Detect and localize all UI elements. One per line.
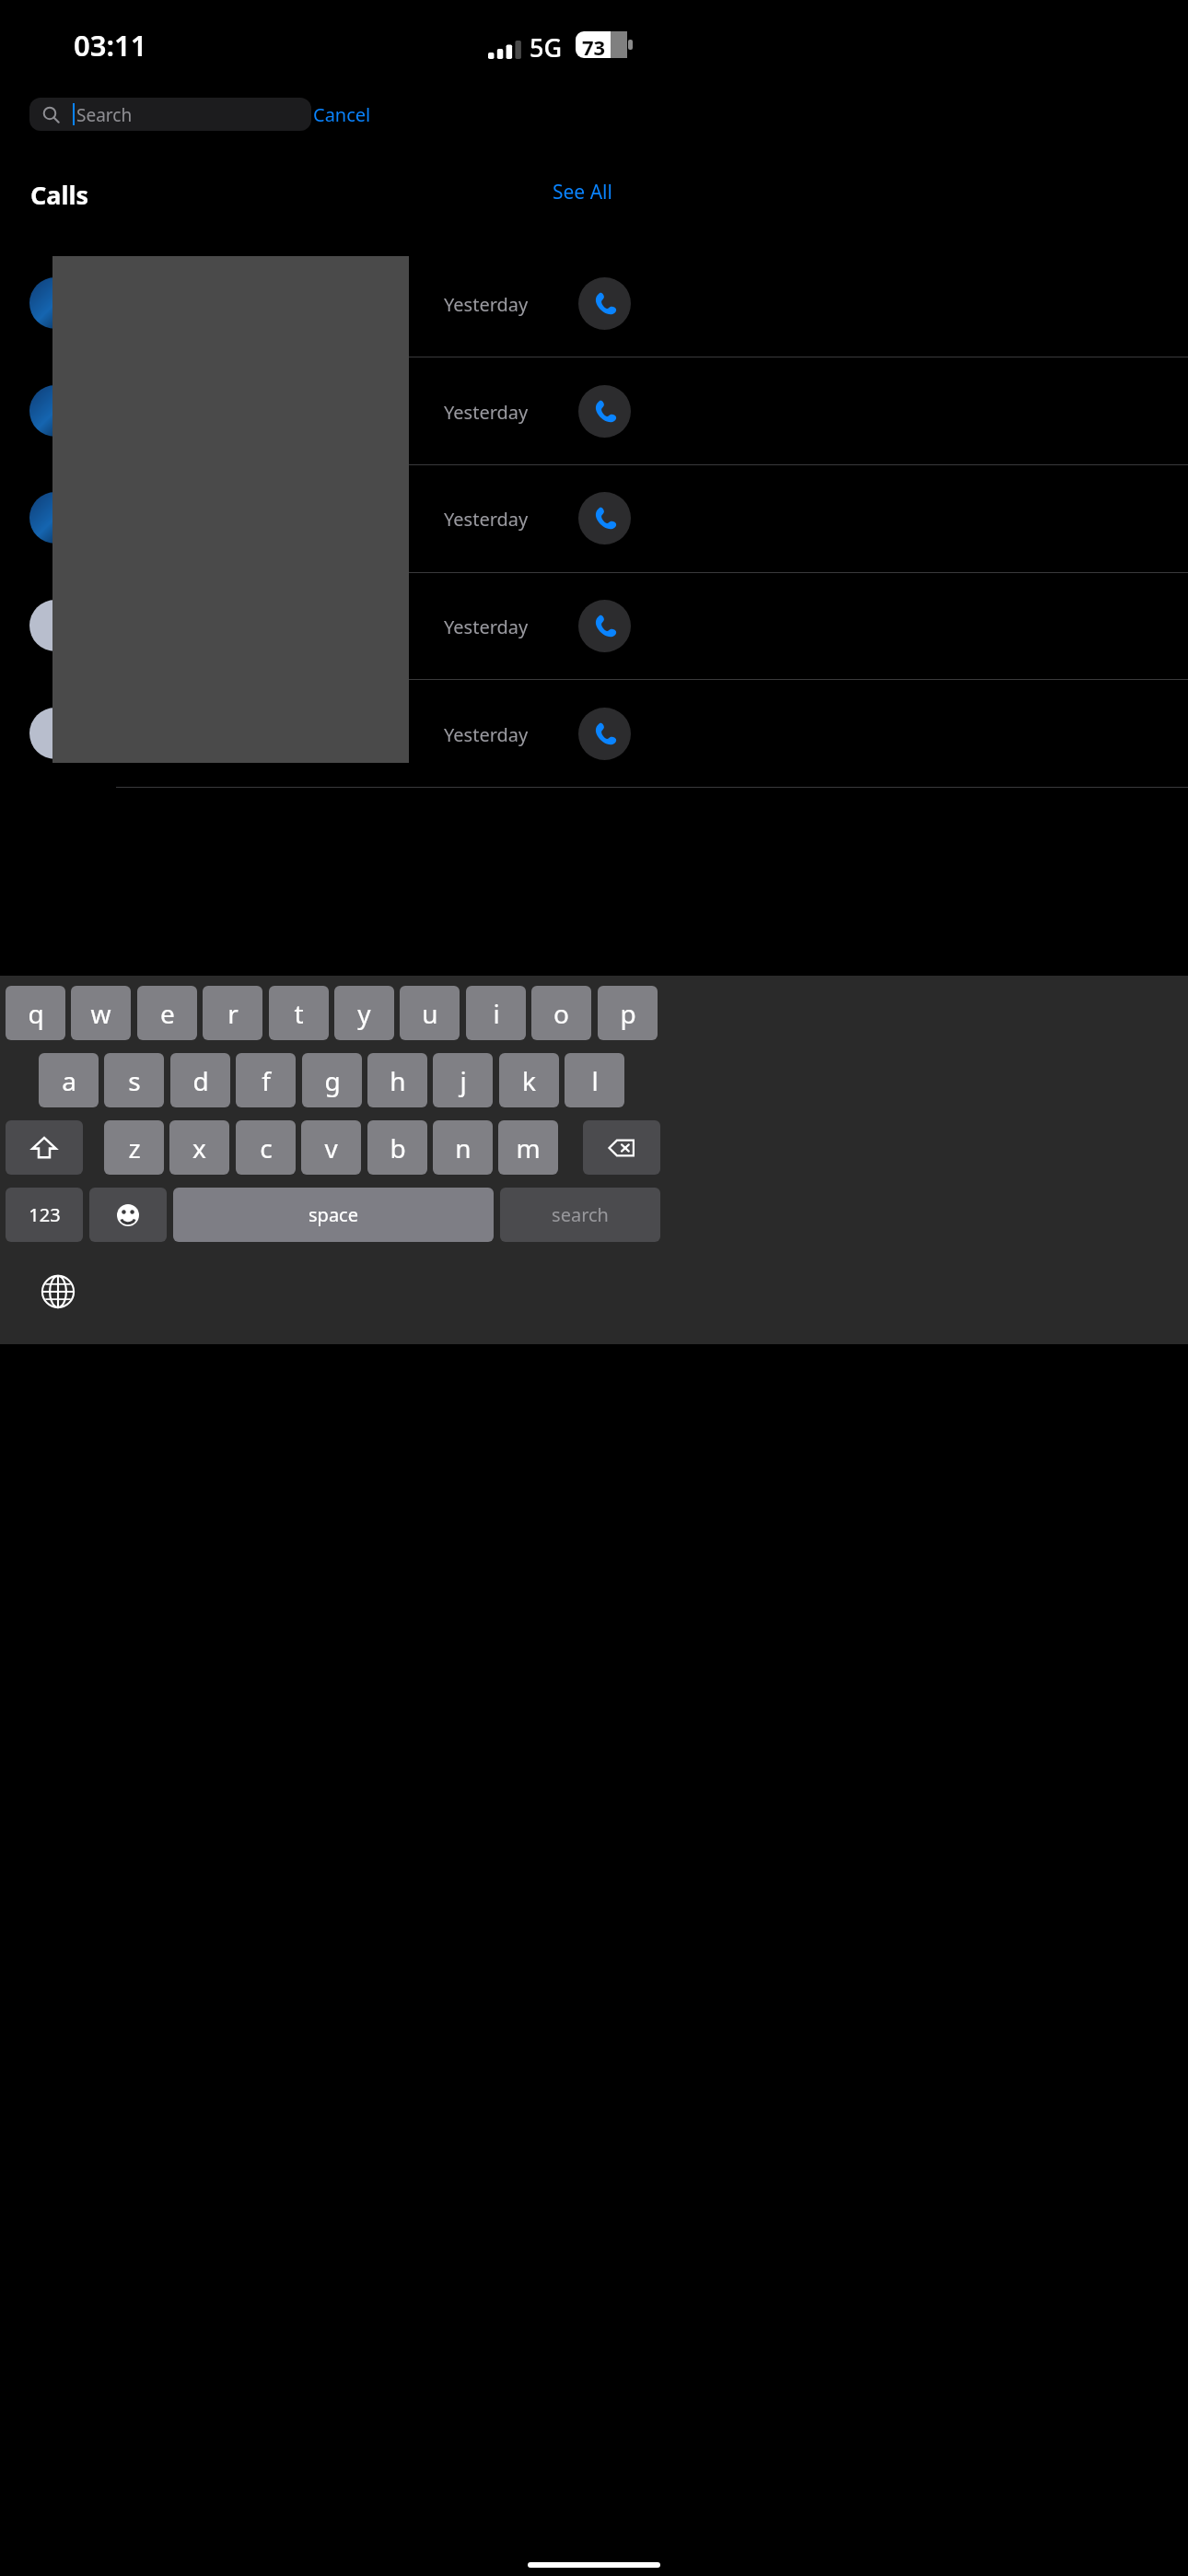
button[interactable]: h: [367, 1053, 427, 1107]
button[interactable]: g: [302, 1053, 362, 1107]
staticText: Cancel: [313, 102, 371, 127]
button[interactable]: p: [598, 986, 658, 1040]
button[interactable]: f: [236, 1053, 296, 1107]
staticText: q: [28, 996, 44, 1031]
staticText: w: [90, 996, 111, 1031]
button[interactable]: Yesterday: [0, 357, 1188, 464]
staticText: r: [227, 996, 239, 1031]
button[interactable]: n: [433, 1120, 493, 1175]
staticText: Calls: [30, 178, 89, 212]
button[interactable]: space: [173, 1188, 494, 1242]
staticText: Yesterday: [444, 722, 529, 747]
staticText: 5G: [530, 30, 563, 64]
button[interactable]: Shift: [6, 1120, 83, 1175]
staticText: Search: [76, 103, 133, 127]
button[interactable]: See All: [549, 175, 616, 209]
button[interactable]: Call: [578, 600, 631, 652]
button[interactable]: r: [203, 986, 262, 1040]
button[interactable]: Yesterday: [0, 250, 1188, 357]
button[interactable]: m: [498, 1120, 558, 1175]
button[interactable]: l: [565, 1053, 624, 1107]
button[interactable]: x: [169, 1120, 229, 1175]
button[interactable]: z: [104, 1120, 164, 1175]
staticText: j: [460, 1063, 467, 1098]
staticText: l: [591, 1063, 599, 1098]
button[interactable]: j: [433, 1053, 493, 1107]
button[interactable]: o: [531, 986, 591, 1040]
staticText: c: [260, 1130, 273, 1165]
button[interactable]: Cancel: [313, 98, 371, 131]
staticText: a: [62, 1063, 76, 1098]
staticText: s: [128, 1063, 141, 1098]
button[interactable]: Call: [578, 277, 631, 330]
staticText: h: [390, 1063, 406, 1098]
button[interactable]: b: [367, 1120, 427, 1175]
staticText: d: [192, 1063, 209, 1098]
button[interactable]: i: [466, 986, 526, 1040]
staticText: t: [294, 996, 304, 1031]
staticText: f: [262, 1063, 271, 1098]
staticText: v: [324, 1130, 338, 1165]
button[interactable]: Call: [578, 492, 631, 544]
staticText: 123: [29, 1202, 61, 1227]
staticText: 03:11: [74, 26, 147, 64]
button[interactable]: Change keyboard language: [37, 1270, 79, 1313]
button[interactable]: d: [170, 1053, 230, 1107]
button[interactable]: c: [236, 1120, 296, 1175]
staticText: Yesterday: [444, 507, 529, 532]
staticText: i: [493, 996, 500, 1031]
button[interactable]: u: [400, 986, 460, 1040]
button[interactable]: Yesterday: [0, 572, 1188, 679]
staticText: Yesterday: [444, 400, 529, 425]
button[interactable]: search: [500, 1188, 660, 1242]
staticText: p: [620, 996, 636, 1031]
button[interactable]: Call: [578, 708, 631, 760]
button[interactable]: q: [6, 986, 65, 1040]
staticText: Yesterday: [444, 615, 529, 639]
staticText: x: [192, 1130, 206, 1165]
button[interactable]: a: [39, 1053, 99, 1107]
staticText: k: [522, 1063, 536, 1098]
staticText: z: [128, 1130, 141, 1165]
staticText: g: [324, 1063, 341, 1098]
staticText: y: [357, 996, 371, 1031]
staticText: See All: [553, 179, 612, 205]
button[interactable]: k: [499, 1053, 559, 1107]
staticText: search: [552, 1202, 609, 1227]
staticText: Yesterday: [444, 292, 529, 317]
button[interactable]: s: [104, 1053, 164, 1107]
button[interactable]: 123: [6, 1188, 83, 1242]
button[interactable]: y: [334, 986, 394, 1040]
button[interactable]: Emoji: [89, 1188, 167, 1242]
button[interactable]: e: [137, 986, 197, 1040]
button[interactable]: t: [269, 986, 329, 1040]
staticText: e: [160, 996, 175, 1031]
staticText: o: [553, 996, 569, 1031]
staticText: m: [516, 1130, 541, 1165]
button[interactable]: Yesterday: [0, 680, 1188, 787]
staticText: u: [422, 996, 438, 1031]
button[interactable]: Backspace: [583, 1120, 660, 1175]
button[interactable]: w: [71, 986, 131, 1040]
button[interactable]: Yesterday: [0, 464, 1188, 571]
button[interactable]: Search: [29, 98, 311, 131]
staticText: n: [455, 1130, 472, 1165]
staticText: 73: [582, 33, 606, 61]
staticText: b: [390, 1130, 406, 1165]
staticText: space: [309, 1202, 358, 1227]
button[interactable]: v: [301, 1120, 361, 1175]
button[interactable]: Call: [578, 385, 631, 438]
